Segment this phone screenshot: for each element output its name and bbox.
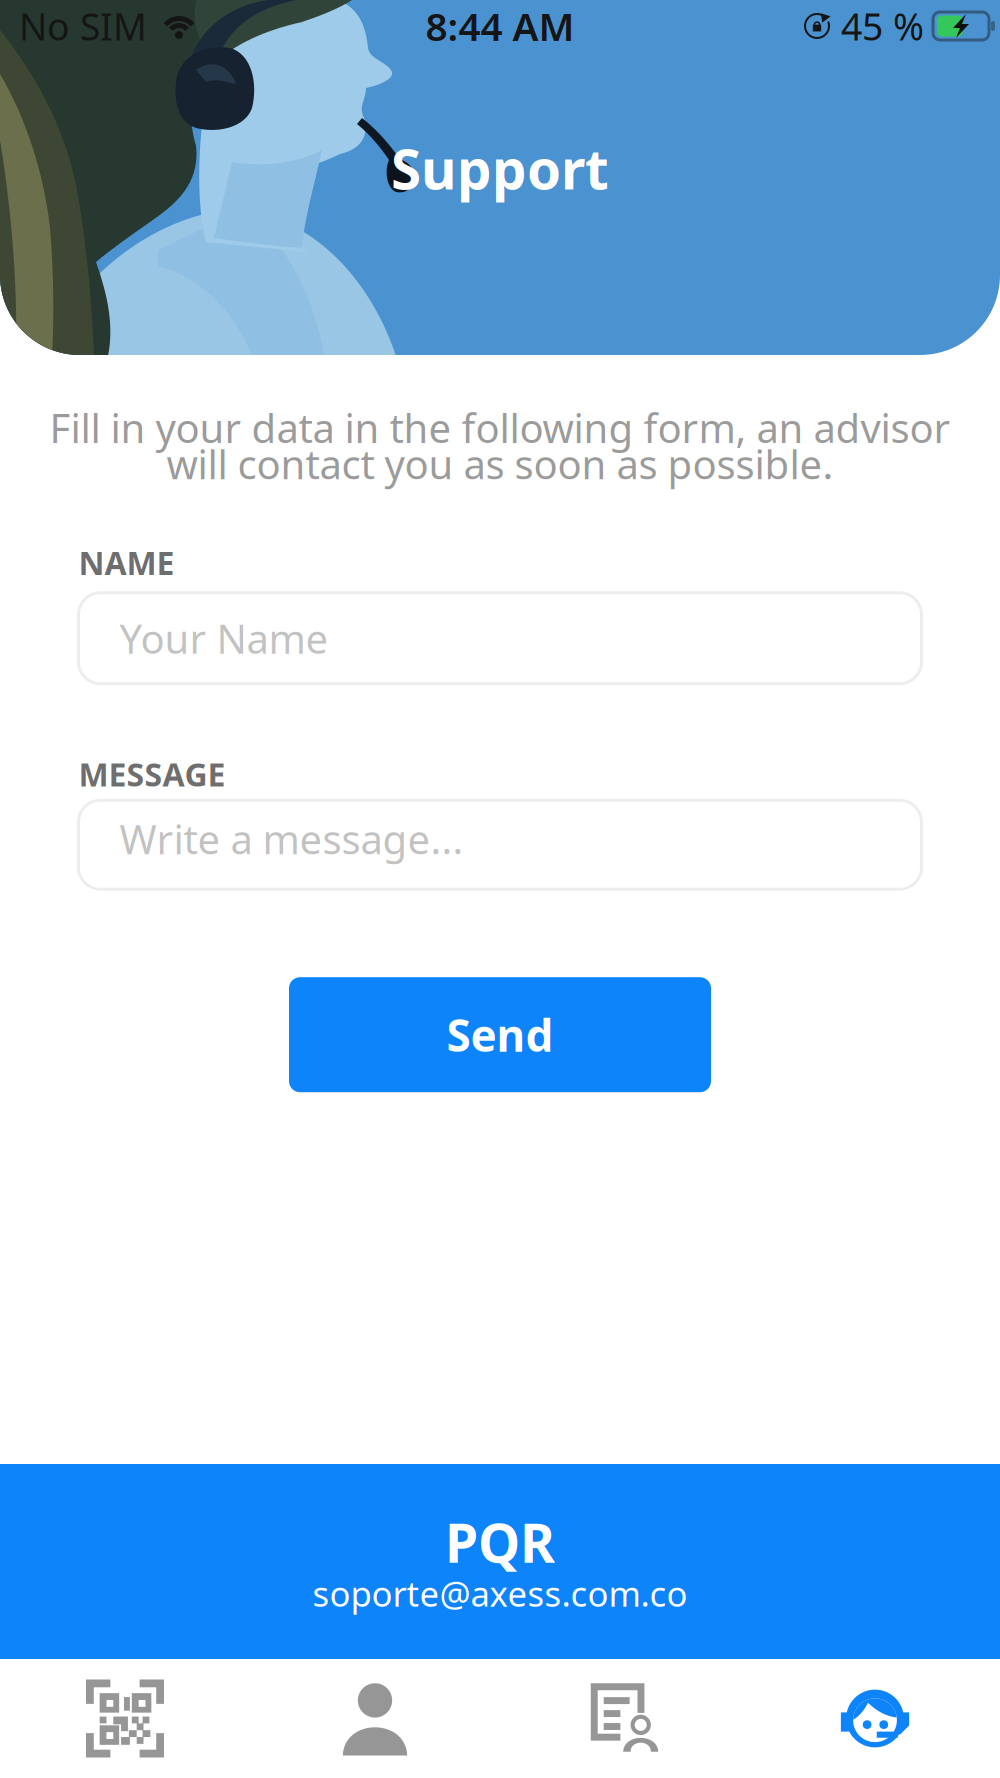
staticText: 45 % [841, 1, 924, 51]
staticText: Write a message... [119, 812, 463, 865]
button[interactable]: Support [750, 1659, 1000, 1778]
button[interactable]: Profile [250, 1659, 500, 1778]
staticText: soporte@axess.com.co [312, 1570, 687, 1616]
staticText: No SIM [19, 1, 147, 51]
staticText: Send [446, 1005, 553, 1064]
staticText: Your Name [119, 612, 328, 665]
staticText: Support [391, 132, 609, 205]
button[interactable]: Send [289, 977, 711, 1092]
staticText: NAME [78, 541, 174, 584]
button[interactable]: Scan QR code [0, 1659, 250, 1778]
button[interactable]: Documents [500, 1659, 750, 1778]
staticText: 8:44 AM [425, 0, 574, 52]
staticText: Fill in your data in the following form,… [49, 401, 950, 454]
button[interactable]: PQR [0, 1464, 1000, 1659]
staticText: MESSAGE [78, 753, 225, 795]
staticText: will contact you as soon as possible. [166, 437, 833, 490]
staticText: PQR [445, 1507, 555, 1577]
